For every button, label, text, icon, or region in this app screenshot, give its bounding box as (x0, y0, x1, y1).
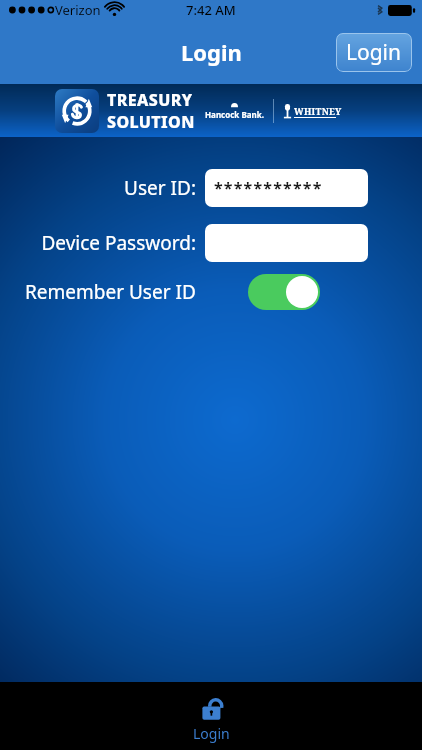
button[interactable]: Login (336, 33, 412, 72)
staticText: *********** (214, 177, 323, 199)
staticText: TREASURY (107, 89, 193, 111)
staticText: Verizon (55, 1, 101, 19)
button[interactable]: *********** (205, 169, 368, 207)
staticText: Remember User ID (25, 279, 196, 305)
button[interactable]: Login (173, 690, 250, 745)
staticText: 7:42 AM (186, 1, 236, 19)
staticText: Hancock Bank. (205, 109, 264, 120)
staticText: Login (193, 724, 230, 743)
staticText: Device Password: (41, 230, 196, 256)
staticText: Login (346, 38, 402, 67)
staticText: Login (181, 37, 242, 67)
staticText: User ID: (124, 175, 196, 201)
button[interactable]: Remember User ID toggle, on (248, 274, 320, 310)
staticText: WHITNEY (294, 105, 342, 117)
staticText: SOLUTION (107, 111, 195, 133)
button[interactable] (205, 224, 368, 262)
